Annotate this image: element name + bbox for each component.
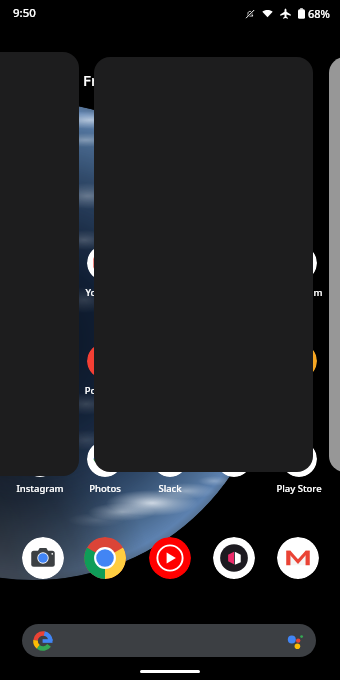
staticText: Instagram — [0, 482, 82, 495]
button[interactable]: YouTube Music — [149, 537, 191, 579]
staticText: Notes — [257, 384, 340, 397]
staticText: YouTube — [63, 286, 147, 299]
staticText: Calendar — [0, 286, 82, 299]
button[interactable]: YouTube — [87, 245, 123, 281]
button[interactable]: Podcasts — [87, 343, 123, 379]
staticText: Photos — [63, 482, 147, 495]
button[interactable]: Photos — [87, 441, 123, 477]
button[interactable]: Chrome — [84, 537, 126, 579]
button[interactable]: Slack — [152, 441, 188, 477]
button[interactable]: Play Store — [281, 441, 317, 477]
button[interactable]: Gmail — [277, 537, 319, 579]
staticText: Keep — [0, 384, 82, 397]
staticText: Slack — [128, 482, 212, 495]
staticText: Play Store — [257, 482, 340, 495]
staticText: 9:50 — [13, 5, 36, 21]
button[interactable]: Recent app — [329, 57, 340, 472]
button[interactable]: Instagram — [22, 441, 58, 477]
button[interactable]: Recent app — [94, 57, 313, 472]
staticText: Podcasts — [63, 384, 147, 397]
button[interactable]: Maps — [216, 441, 252, 477]
button[interactable]: Notes — [281, 343, 317, 379]
button[interactable]: App — [213, 537, 255, 579]
staticText: Instagram — [257, 286, 340, 299]
button[interactable]: Insta — [281, 245, 317, 281]
staticText: 68% — [308, 6, 330, 21]
button[interactable]: Fri, Aug 26 — [83, 70, 159, 90]
button[interactable]: Camera — [22, 537, 64, 579]
button[interactable] — [22, 624, 316, 657]
